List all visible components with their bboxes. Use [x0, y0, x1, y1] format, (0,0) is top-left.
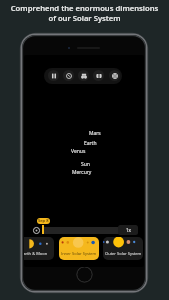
button[interactable]: Timeline	[42, 227, 125, 234]
staticText: Comprehend the enormous dimensions of ou…	[0, 3, 169, 23]
staticText: Venus	[71, 148, 86, 155]
staticText: 1x	[126, 227, 131, 233]
staticText: Mars	[89, 130, 101, 137]
staticText: Outer Solar System	[105, 251, 142, 257]
staticText: Mercury	[72, 169, 92, 176]
staticText: Sep 8	[38, 218, 49, 224]
button[interactable]: Outer Solar System	[103, 237, 143, 260]
button[interactable]: Observe	[78, 70, 89, 81]
staticText: Inner Solar System	[61, 251, 97, 257]
button[interactable]: Set date	[33, 227, 40, 234]
button[interactable]: 1x	[118, 225, 138, 235]
button[interactable]: Information	[93, 70, 104, 81]
button[interactable]: Pause	[48, 70, 59, 81]
button[interactable]: Time speed	[63, 70, 74, 81]
button[interactable]: Settings	[109, 70, 120, 81]
button[interactable]: Inner Solar System	[59, 237, 99, 260]
button[interactable]: Home	[76, 266, 93, 283]
staticText: Earth	[84, 140, 97, 147]
button[interactable]: Earth & Moon	[24, 237, 54, 260]
staticText: Earth & Moon	[24, 251, 48, 257]
button[interactable]: Sep 8	[37, 218, 50, 224]
staticText: Sun	[81, 161, 90, 168]
